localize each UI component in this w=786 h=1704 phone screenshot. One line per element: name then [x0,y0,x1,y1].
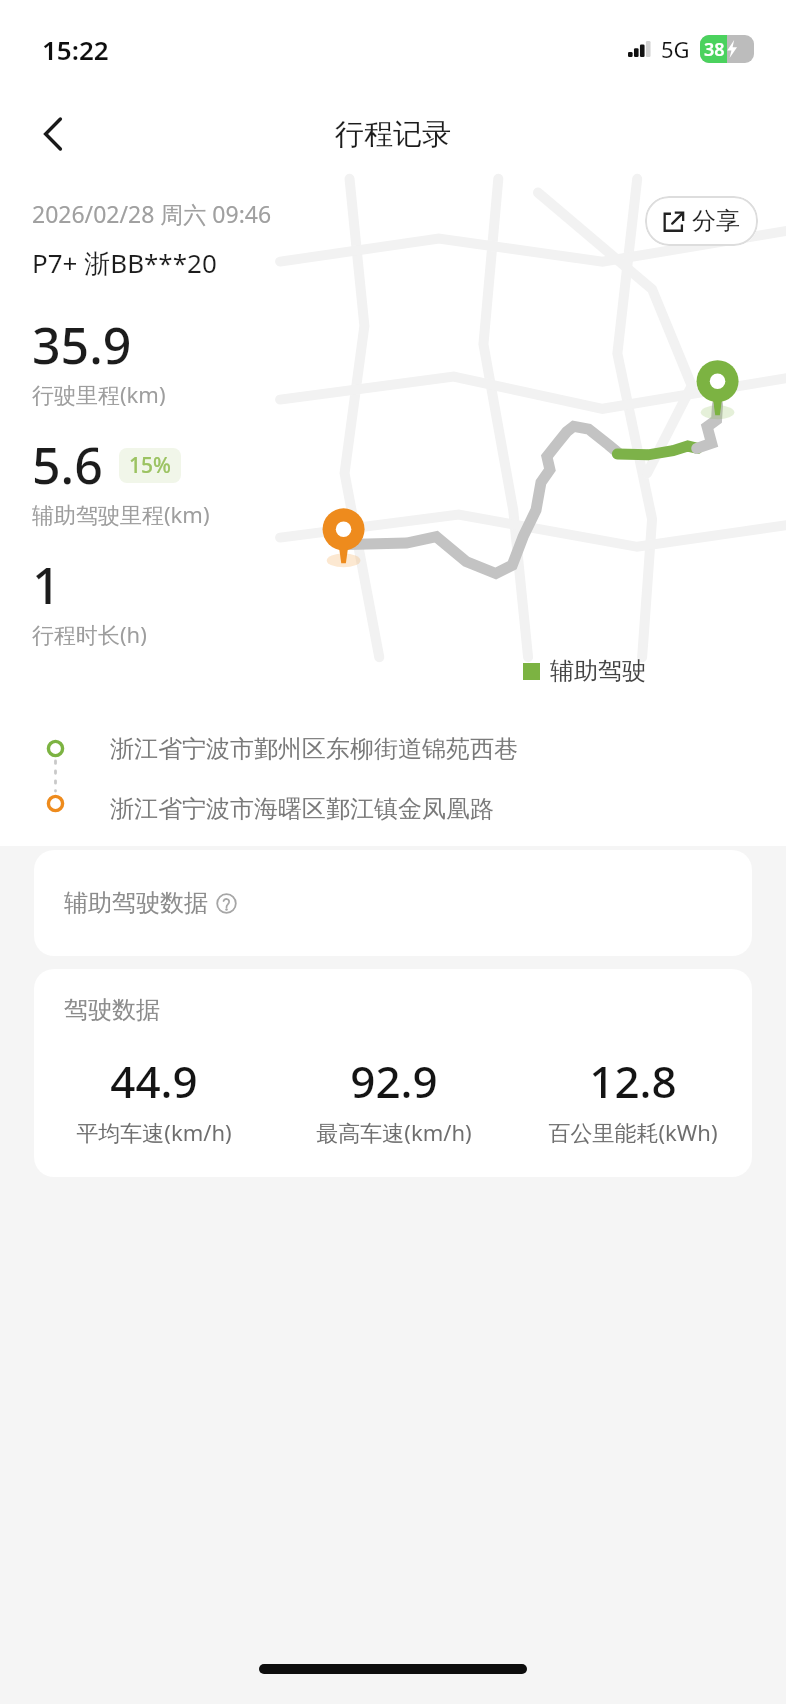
staticText: 1 [32,551,61,619]
staticText: 35.9 [32,311,132,379]
staticText: 百公里能耗(kWh) [548,1117,718,1147]
staticText: 行程时长(h) [32,619,147,649]
other: Info [216,893,237,914]
button[interactable]: 辅助驾驶数据 [34,850,752,956]
staticText: 平均车速(km/h) [76,1117,232,1147]
staticText: 12.8 [589,1051,677,1111]
staticText: 行程记录 [335,116,451,153]
staticText: 分享 [692,206,740,236]
staticText: 驾驶数据 [64,995,160,1025]
staticText: P7+ 浙BB***20 [32,245,217,281]
staticText: 浙江省宁波市海曙区鄞江镇金凤凰路 [110,794,494,824]
staticText: 44.9 [110,1051,198,1111]
staticText: 辅助驾驶数据 [64,888,208,918]
staticText: 5G [661,34,690,64]
button[interactable]: 驾驶数据 [34,969,752,1177]
staticText: 辅助驾驶 [550,656,646,686]
staticText: 2026/02/28 周六 09:46 [32,198,272,229]
staticText: 15% [129,451,171,480]
staticText: 15:22 [42,32,109,67]
staticText: 最高车速(km/h) [316,1117,472,1147]
staticText: 行驶里程(km) [32,379,166,409]
staticText: 5.6 [32,431,103,499]
staticText: 辅助驾驶里程(km) [32,499,210,529]
staticText: 38 [704,37,725,62]
staticText: 92.9 [350,1051,438,1111]
staticText: 浙江省宁波市鄞州区东柳街道锦苑西巷 [110,734,518,764]
button[interactable]: 分享 [645,196,758,246]
button[interactable]: Back [24,104,84,164]
